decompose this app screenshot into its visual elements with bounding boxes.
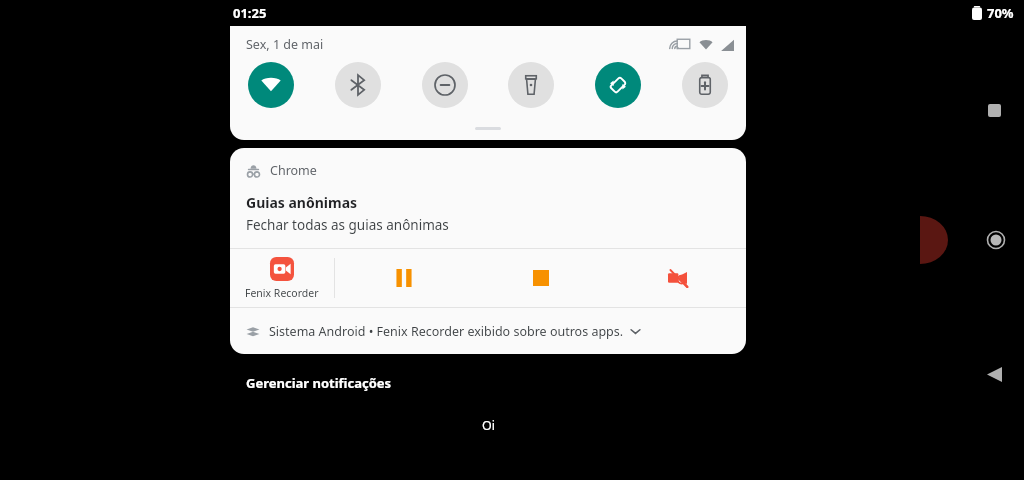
staticText: 70% bbox=[987, 4, 1014, 22]
staticText: Chrome bbox=[270, 162, 317, 179]
button[interactable]: Recentes bbox=[976, 92, 1012, 128]
staticText: Sex, 1 de mai bbox=[246, 36, 324, 53]
staticText: Sistema Android • Fenix Recorder exibido… bbox=[269, 323, 624, 340]
button[interactable]: Rotação automática bbox=[595, 62, 641, 108]
staticText: Fenix Recorder bbox=[245, 286, 319, 300]
button[interactable]: Parar bbox=[472, 249, 609, 307]
staticText: Guias anônimas bbox=[246, 193, 358, 212]
button[interactable]: Desativar câmera bbox=[609, 249, 746, 307]
button[interactable]: Sistema Android • Fenix Recorder exibido… bbox=[230, 308, 746, 354]
staticText: Fechar todas as guias anônimas bbox=[246, 216, 449, 234]
button[interactable]: Bluetooth bbox=[335, 62, 381, 108]
button[interactable]: Início bbox=[976, 220, 1016, 260]
button[interactable]: Economia de bateria bbox=[682, 62, 728, 108]
button[interactable]: Chrome bbox=[230, 148, 746, 248]
button[interactable]: Lanterna bbox=[508, 62, 554, 108]
button[interactable]: Wi-Fi bbox=[248, 62, 294, 108]
button[interactable]: Fenix Recorder bbox=[230, 249, 334, 307]
button[interactable]: Não perturbe bbox=[422, 62, 468, 108]
button[interactable]: Voltar bbox=[976, 356, 1012, 392]
button[interactable]: Gerenciar notificações bbox=[246, 374, 392, 392]
button[interactable]: Pausar bbox=[335, 249, 472, 307]
staticText: 01:25 bbox=[233, 4, 267, 22]
staticText: Oi bbox=[482, 417, 495, 434]
staticText: Gerenciar notificações bbox=[246, 374, 392, 392]
